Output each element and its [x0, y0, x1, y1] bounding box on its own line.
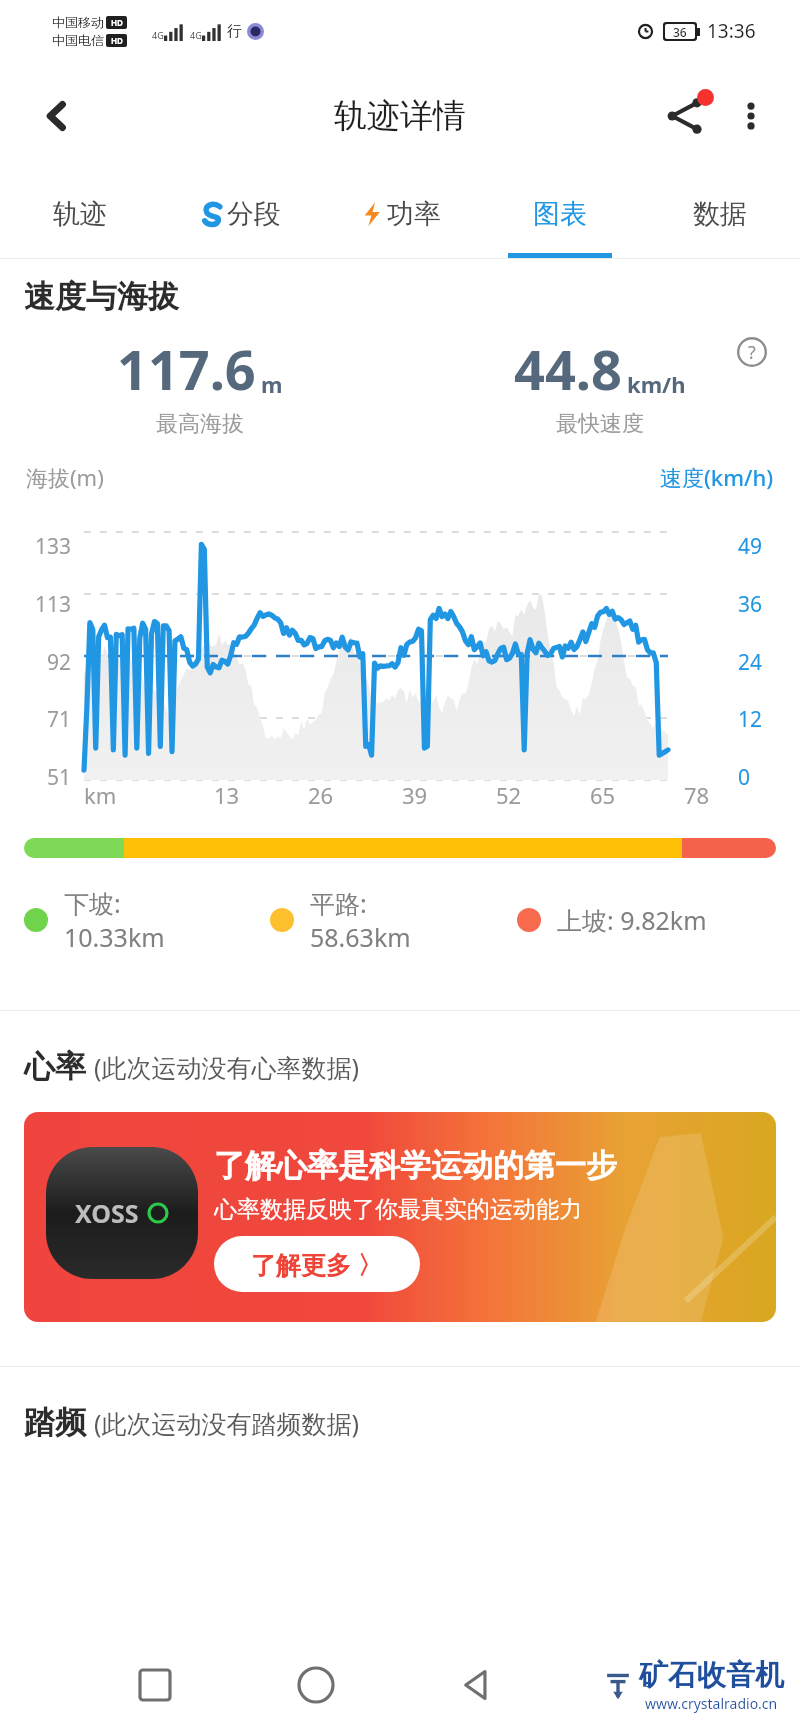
staticText: 13:36: [707, 18, 756, 44]
staticText: www.crystalradio.cn: [645, 1694, 778, 1713]
staticText: 中国移动: [52, 14, 104, 30]
staticText: 36: [738, 590, 763, 619]
staticText: 踏频: [24, 1403, 86, 1442]
button[interactable]: 功率: [320, 170, 480, 258]
staticText: 海拔(m): [26, 462, 104, 492]
staticText: 下坡:: [64, 886, 121, 920]
staticText: 4G: [190, 29, 202, 41]
staticText: 最高海拔: [156, 410, 244, 438]
staticText: 矿石收音机: [639, 1657, 784, 1694]
staticText: 44.8: [514, 332, 622, 406]
staticText: XOSS: [75, 1196, 139, 1230]
staticText: 24: [738, 648, 763, 677]
staticText: 133: [35, 532, 72, 561]
button[interactable]: 返回: [26, 85, 88, 147]
staticText: km/h: [627, 369, 686, 399]
staticText: 26: [308, 780, 334, 810]
button[interactable]: 更多: [720, 85, 782, 147]
button[interactable]: 帮助: [732, 332, 772, 372]
staticText: 最快速度: [556, 410, 644, 438]
staticText: 功率: [387, 197, 441, 231]
staticText: 49: [738, 532, 763, 561]
staticText: 0: [738, 763, 751, 792]
staticText: 71: [47, 705, 72, 734]
button[interactable]: 数据: [640, 170, 800, 258]
staticText: 78: [684, 780, 710, 810]
staticText: (此次运动没有踏频数据): [94, 1406, 360, 1440]
staticText: km: [84, 780, 117, 810]
staticText: m: [261, 369, 283, 399]
staticText: 13: [214, 780, 240, 810]
staticText: 51: [47, 763, 72, 792]
staticText: 图表: [533, 197, 587, 231]
staticText: 速度(km/h): [660, 462, 774, 492]
staticText: 中国电信: [52, 32, 104, 48]
staticText: 数据: [693, 197, 747, 231]
staticText: 了解心率是科学运动的第一步: [214, 1146, 617, 1185]
staticText: 了解更多 〉: [251, 1247, 383, 1281]
staticText: HD: [111, 35, 123, 46]
staticText: (此次运动没有心率数据): [94, 1050, 360, 1084]
staticText: 39: [402, 780, 428, 810]
staticText: HD: [111, 17, 123, 28]
staticText: 行: [227, 22, 242, 41]
staticText: 10.33km: [64, 920, 165, 954]
staticText: 117.6: [117, 332, 256, 406]
button[interactable]: 图表: [480, 170, 640, 258]
button[interactable]: 了解更多 〉: [214, 1236, 420, 1292]
staticText: 12: [738, 705, 763, 734]
button[interactable]: 主页: [281, 1650, 351, 1720]
staticText: 52: [496, 780, 522, 810]
button[interactable]: 轨迹: [0, 170, 160, 258]
staticText: 58.63km: [310, 920, 411, 954]
button[interactable]: 分享: [650, 81, 720, 151]
staticText: 113: [35, 590, 72, 619]
button[interactable]: 返回: [441, 1650, 511, 1720]
staticText: 心率: [24, 1047, 86, 1086]
button[interactable]: 分段: [160, 170, 320, 258]
staticText: 分段: [227, 197, 281, 231]
staticText: 4G: [152, 29, 164, 41]
staticText: 轨迹: [53, 197, 107, 231]
staticText: 92: [47, 648, 72, 677]
staticText: 平路:: [310, 886, 367, 920]
staticText: 65: [590, 780, 616, 810]
staticText: 心率数据反映了你最真实的运动能力: [214, 1195, 582, 1224]
staticText: 速度与海拔: [24, 277, 179, 316]
staticText: 上坡: 9.82km: [557, 903, 707, 937]
button[interactable]: XOSS: [24, 1112, 776, 1322]
button[interactable]: 最近任务: [120, 1650, 190, 1720]
staticText: ?: [748, 340, 756, 365]
staticText: 轨迹详情: [334, 95, 466, 137]
staticText: 36: [673, 24, 687, 39]
